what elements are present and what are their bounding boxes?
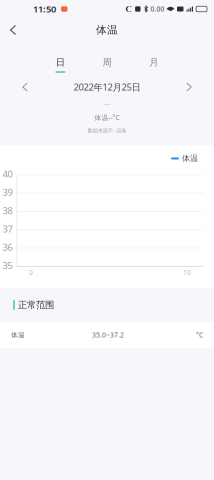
staticText: 数据来源于--设备 [87,127,126,134]
staticText: 10 [183,268,191,277]
staticText: °C [196,330,203,339]
button[interactable]: 日 [37,57,84,73]
staticText: 36 [2,241,12,253]
staticText: 0.00 [150,5,164,13]
staticText: 39 [2,186,12,198]
staticText: 38 [2,204,12,217]
staticText: 35 [2,259,12,272]
button[interactable]: 月 [130,57,177,73]
staticText: 日 [56,57,65,68]
staticText: 40 [2,168,12,180]
staticText: 体温 [11,331,25,339]
button[interactable]: 体温 [0,322,214,348]
staticText: 35.0~37.2 [92,330,124,339]
button[interactable]: 周 [84,57,130,73]
staticText: 正常范围 [18,299,54,311]
button[interactable]: Previous day [13,78,37,96]
staticText: 体温--°C [94,113,119,122]
staticText: 月 [149,57,158,68]
staticText: 2022年12月25日 [73,81,140,93]
button[interactable]: Back [0,18,26,42]
staticText: 11:50 [33,3,56,15]
staticText: 周 [102,57,111,68]
button[interactable]: Next day [177,78,201,96]
staticText: 体温 [182,153,198,163]
staticText: 体温 [96,23,118,36]
staticText: 0 [29,268,33,277]
staticText: 37 [2,223,12,235]
